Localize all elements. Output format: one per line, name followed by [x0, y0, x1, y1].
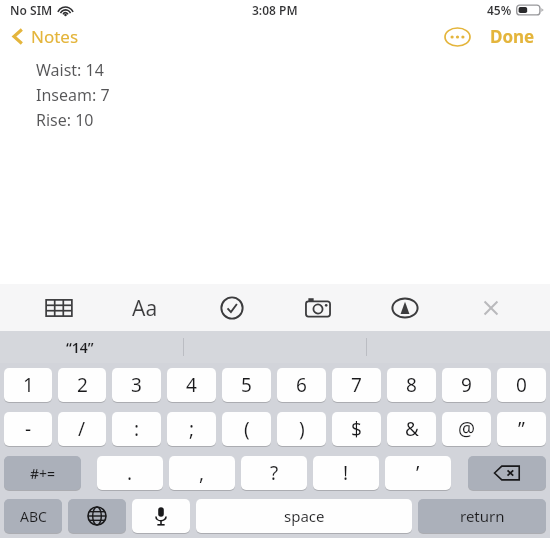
button[interactable]: 1: [4, 368, 52, 402]
staticText: #+=: [30, 464, 56, 483]
button[interactable]: Camera: [299, 289, 337, 327]
staticText: 7: [351, 372, 362, 398]
staticText: 3:08 PM: [252, 2, 298, 18]
button[interactable]: Hide keyboard: [472, 289, 510, 327]
button[interactable]: #+=: [4, 456, 81, 490]
button[interactable]: 0: [497, 368, 546, 402]
staticText: -: [25, 416, 32, 442]
staticText: $: [351, 416, 362, 442]
button[interactable]: ”: [497, 412, 546, 446]
staticText: ’: [416, 460, 420, 486]
staticText: 6: [296, 372, 307, 398]
staticText: Notes: [31, 25, 79, 48]
button[interactable]: ,: [169, 456, 235, 490]
staticText: .: [127, 460, 133, 486]
button[interactable]: Checklist: [213, 289, 251, 327]
button[interactable]: ): [277, 412, 326, 446]
button[interactable]: &: [387, 412, 436, 446]
button[interactable]: return: [418, 499, 546, 533]
button[interactable]: Done: [485, 20, 540, 53]
button[interactable]: ABC: [4, 499, 62, 533]
button[interactable]: 3: [112, 368, 161, 402]
staticText: 5: [241, 372, 252, 398]
staticText: Aa: [132, 294, 158, 323]
staticText: 3: [131, 372, 142, 398]
button[interactable]: More options: [441, 21, 473, 53]
staticText: No SIM: [10, 2, 53, 18]
button[interactable]: Backspace: [468, 456, 546, 490]
button[interactable]: 8: [387, 368, 436, 402]
staticText: Inseam: 7: [36, 84, 110, 106]
button[interactable]: :: [112, 412, 161, 446]
staticText: Rise: 10: [36, 109, 94, 131]
button[interactable]: space: [196, 499, 412, 533]
staticText: /: [78, 416, 86, 442]
staticText: 0: [516, 372, 527, 398]
staticText: 9: [461, 372, 472, 398]
staticText: 45%: [487, 2, 512, 18]
staticText: (: [244, 416, 250, 442]
staticText: &: [405, 416, 419, 442]
staticText: ?: [270, 460, 279, 486]
staticText: 2: [77, 372, 88, 398]
staticText: Waist: 14: [36, 59, 104, 81]
button[interactable]: (: [222, 412, 271, 446]
staticText: 4: [186, 372, 197, 398]
button[interactable]: -: [4, 412, 52, 446]
button[interactable]: 6: [277, 368, 326, 402]
button[interactable]: .: [97, 456, 163, 490]
staticText: ”: [518, 416, 525, 442]
staticText: ABC: [20, 507, 47, 526]
staticText: 1: [23, 372, 34, 398]
button[interactable]: 2: [58, 368, 106, 402]
staticText: return: [460, 506, 505, 526]
staticText: :: [134, 416, 140, 442]
staticText: !: [343, 460, 349, 486]
button[interactable]: “14”: [60, 332, 100, 363]
button[interactable]: !: [313, 456, 379, 490]
button[interactable]: ;: [167, 412, 216, 446]
button[interactable]: Notes: [0, 21, 91, 52]
staticText: “14”: [66, 338, 94, 357]
button[interactable]: ?: [241, 456, 307, 490]
button[interactable]: ’: [385, 456, 451, 490]
button[interactable]: Text formatting: [126, 289, 164, 327]
staticText: ;: [189, 416, 195, 442]
button[interactable]: 9: [442, 368, 491, 402]
staticText: ): [299, 416, 305, 442]
staticText: Done: [490, 25, 535, 48]
button[interactable]: /: [58, 412, 106, 446]
staticText: space: [284, 506, 325, 526]
staticText: @: [458, 416, 476, 442]
button[interactable]: @: [442, 412, 491, 446]
button[interactable]: $: [332, 412, 381, 446]
button[interactable]: Insert table: [40, 289, 78, 327]
staticText: 8: [406, 372, 417, 398]
button[interactable]: 5: [222, 368, 271, 402]
button[interactable]: 7: [332, 368, 381, 402]
button[interactable]: 4: [167, 368, 216, 402]
staticText: ,: [199, 460, 205, 486]
button[interactable]: Markup: [386, 289, 424, 327]
button[interactable]: Dictation: [132, 499, 190, 533]
button[interactable]: Change keyboard language: [68, 499, 126, 533]
